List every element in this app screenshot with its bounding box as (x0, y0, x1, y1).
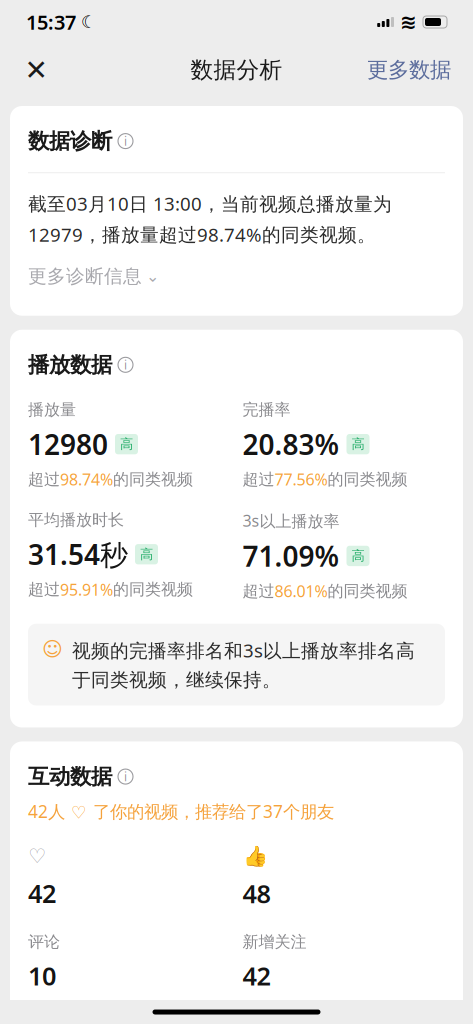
staticText: 48 (242, 876, 270, 910)
staticText: 完播率 (242, 400, 290, 420)
staticText: 互动数据 (28, 763, 112, 790)
staticText: 播放数据 (28, 352, 112, 378)
staticText: 10 (28, 959, 56, 992)
staticText: 高 (140, 546, 153, 562)
staticText: 高 (120, 436, 133, 452)
staticText: 的同类视频 (113, 469, 193, 489)
staticText: 更多诊断信息 (28, 265, 142, 288)
staticText: 42人 ♡ 了你的视频，推荐给了37个朋友 (28, 800, 334, 823)
staticText: 15:37 (26, 9, 76, 35)
button[interactable]: 更多诊断信息 (28, 259, 445, 294)
staticText: ☺ (42, 638, 63, 660)
staticText: 播放量 (28, 400, 76, 420)
staticText: 高 (351, 548, 364, 564)
staticText: 超过 (242, 581, 274, 601)
staticText: i (124, 769, 127, 784)
staticText: 评论 (28, 932, 60, 952)
staticText: 截至03月10日 13:00，当前视频总播放量为12979，播放量超过98.74… (28, 191, 392, 247)
staticText: 的同类视频 (113, 580, 193, 599)
staticText: 77.56% (274, 469, 327, 490)
button[interactable]: 更多数据 (359, 48, 459, 92)
staticText: ≋ (400, 11, 417, 33)
staticText: 数据诊断 (28, 128, 112, 154)
staticText: 的同类视频 (327, 581, 407, 601)
staticText: 95.91% (60, 579, 113, 600)
staticText: 高 (351, 436, 364, 452)
staticText: 视频的完播率排名和3s以上播放率排名高于同类视频，继续保持。 (72, 638, 415, 691)
staticText: 20.83% (242, 426, 339, 463)
staticText: ♡ (28, 845, 46, 867)
staticText: i (124, 357, 127, 373)
staticText: ⌄ (146, 267, 159, 285)
staticText: 👍 (242, 845, 267, 868)
staticText: 42 (28, 876, 56, 910)
staticText: 数据分析 (190, 56, 282, 84)
staticText: 平均播放时长 (28, 510, 124, 530)
staticText: 超过 (28, 469, 60, 489)
button[interactable]: 关闭 (14, 48, 58, 92)
staticText: 12980 (28, 426, 108, 463)
staticText: 98.74% (60, 469, 113, 490)
staticText: 新增关注 (242, 932, 306, 952)
staticText: ✕ (24, 54, 47, 86)
staticText: 更多数据 (367, 57, 451, 83)
staticText: 超过 (28, 580, 60, 599)
staticText: 71.09% (242, 537, 339, 574)
staticText: 42 (242, 959, 270, 992)
staticText: ☾ (81, 12, 97, 32)
staticText: 超过 (242, 469, 274, 489)
staticText: 的同类视频 (327, 469, 407, 489)
staticText: 31.54秒 (28, 536, 128, 573)
staticText: 3s以上播放率 (242, 510, 339, 531)
staticText: 86.01% (274, 580, 327, 602)
staticText: i (124, 133, 127, 149)
